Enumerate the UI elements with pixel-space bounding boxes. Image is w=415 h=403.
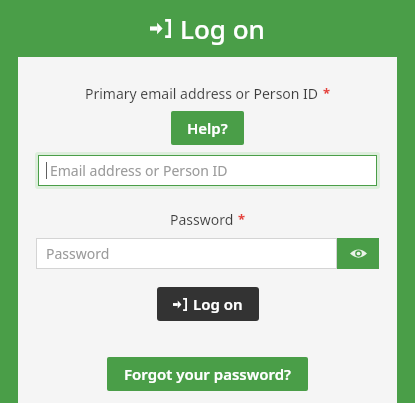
staticText: Help? — [187, 118, 228, 138]
staticText: Log on — [180, 11, 265, 46]
staticText: Primary email address or Person ID — [85, 84, 319, 103]
staticText: Password — [46, 244, 110, 263]
button[interactable]: Password — [36, 238, 337, 269]
button[interactable]: Email address or Person ID — [38, 155, 377, 186]
button[interactable]: Help? — [171, 111, 244, 145]
staticText: * — [238, 210, 246, 228]
button[interactable]: Forgot your password? — [107, 357, 308, 391]
staticText: * — [323, 84, 331, 102]
staticText: Forgot your password? — [124, 364, 291, 384]
button[interactable]: Log on — [157, 287, 259, 321]
staticText: Password — [170, 210, 234, 229]
staticText: Log on — [193, 294, 243, 314]
staticText: Email address or Person ID — [50, 161, 228, 180]
button[interactable]: Show password — [337, 238, 379, 269]
